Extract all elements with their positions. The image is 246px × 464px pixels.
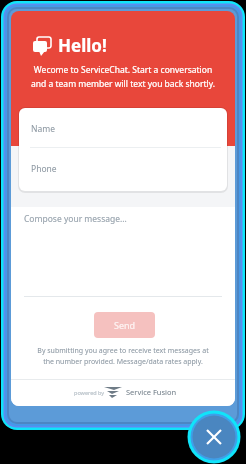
staticText: Wecome to ServiceChat. Start a conversat… (11, 64, 235, 89)
staticText: Send (114, 319, 136, 331)
staticText: Name (31, 123, 55, 135)
staticText: Hello! (58, 34, 107, 57)
button[interactable]: Compose your message... (11, 207, 235, 299)
button[interactable]: Send (94, 312, 155, 338)
button[interactable]: Service Fusion (126, 387, 177, 397)
staticText: Phone (31, 163, 57, 175)
button[interactable] (194, 417, 234, 457)
staticText: By submitting you agree to receive text … (11, 346, 235, 366)
button[interactable]: Name (19, 110, 227, 150)
staticText: Compose your message... (24, 213, 127, 225)
staticText: powered by (74, 389, 105, 396)
button[interactable]: Phone (19, 152, 227, 191)
